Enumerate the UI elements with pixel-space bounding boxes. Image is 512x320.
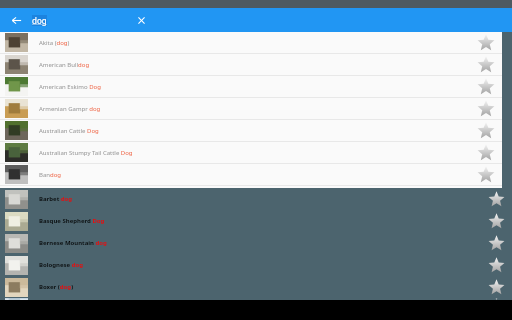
button[interactable]: Back xyxy=(0,8,32,32)
button[interactable]: Favourite xyxy=(470,142,502,163)
button[interactable]: Favourite xyxy=(480,232,512,254)
button[interactable]: Boxer (dog) xyxy=(0,276,512,298)
button[interactable]: Favourite xyxy=(470,120,502,141)
button[interactable]: Clear search xyxy=(130,8,152,32)
button[interactable]: Armenian Gampr dog xyxy=(0,98,502,120)
button[interactable]: Barbet dog xyxy=(0,188,512,210)
staticText: Boxer (dog) xyxy=(39,283,74,291)
staticText: Bernese Mountain dog xyxy=(39,239,107,247)
button[interactable]: Favourite xyxy=(470,76,502,97)
staticText: Barbet dog xyxy=(39,195,73,203)
staticText: American Bulldog xyxy=(39,61,90,69)
button[interactable]: Favourite xyxy=(480,298,512,300)
staticText: Bolognese dog xyxy=(39,261,84,269)
staticText: Australian Stumpy Tail Cattle Dog xyxy=(39,149,133,157)
button[interactable]: Boykin dog xyxy=(0,298,512,300)
button[interactable]: American Bulldog xyxy=(0,54,502,76)
staticText: American Eskimo Dog xyxy=(39,83,101,91)
button[interactable]: Favourite xyxy=(470,32,502,53)
button[interactable]: Favourite xyxy=(480,276,512,298)
button[interactable]: Bandog xyxy=(0,164,502,186)
button[interactable]: Australian Cattle Dog xyxy=(0,120,502,142)
button[interactable]: Favourite xyxy=(470,98,502,119)
button[interactable]: Bernese Mountain dog xyxy=(0,232,512,254)
button[interactable]: Akita (dog) xyxy=(0,32,502,54)
staticText: Australian Cattle Dog xyxy=(39,127,99,135)
button[interactable]: Favourite xyxy=(470,164,502,185)
staticText: Armenian Gampr dog xyxy=(39,105,101,113)
staticText: Basque Shepherd Dog xyxy=(39,217,105,225)
button[interactable]: American Eskimo Dog xyxy=(0,76,502,98)
button[interactable]: Bolognese dog xyxy=(0,254,512,276)
button[interactable]: Australian Stumpy Tail Cattle Dog xyxy=(0,142,502,164)
button[interactable]: Basque Shepherd Dog xyxy=(0,210,512,232)
staticText: dog xyxy=(32,15,47,26)
staticText: Bandog xyxy=(39,171,61,179)
button[interactable]: Favourite xyxy=(480,188,512,210)
staticText: Akita (dog) xyxy=(39,39,70,47)
button[interactable]: Favourite xyxy=(470,54,502,75)
button[interactable]: Favourite xyxy=(480,210,512,232)
button[interactable]: dog xyxy=(32,8,130,32)
button[interactable]: Favourite xyxy=(480,254,512,276)
